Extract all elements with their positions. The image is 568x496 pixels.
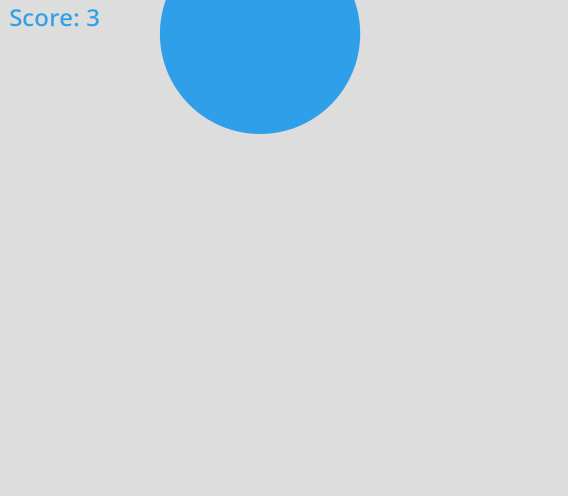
button[interactable]: Ball <box>160 0 360 134</box>
staticText: Score: 3 <box>9 1 100 33</box>
